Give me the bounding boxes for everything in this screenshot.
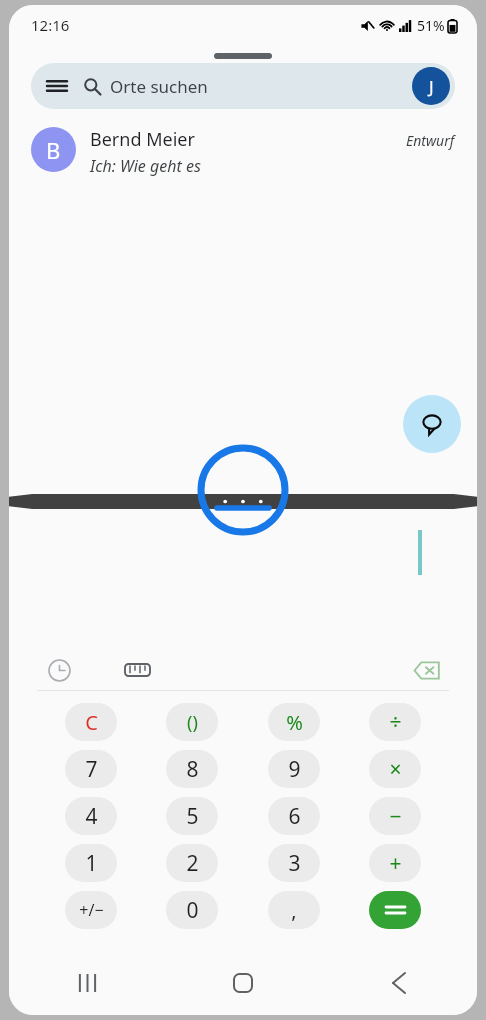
staticText: 2 bbox=[186, 849, 199, 878]
button[interactable]: Home bbox=[165, 959, 321, 1007]
staticText: 4 bbox=[85, 802, 98, 831]
staticText: , bbox=[291, 897, 297, 924]
button[interactable]: Menu bbox=[31, 63, 455, 109]
button[interactable]: − bbox=[369, 797, 421, 835]
staticText: Ich: Wie geht es bbox=[90, 155, 201, 177]
button[interactable] bbox=[369, 891, 421, 929]
button[interactable]: 6 bbox=[268, 797, 320, 835]
staticText: Orte suchen bbox=[110, 75, 208, 98]
staticText: 0 bbox=[186, 896, 199, 925]
button[interactable]: , bbox=[268, 891, 320, 929]
button[interactable]: New chat bbox=[403, 395, 461, 453]
staticText: 9 bbox=[288, 755, 301, 784]
button[interactable]: 7 bbox=[65, 750, 117, 788]
staticText: 7 bbox=[85, 755, 98, 784]
button[interactable]: Recent apps bbox=[9, 959, 165, 1007]
staticText: ÷ bbox=[389, 708, 402, 737]
button[interactable]: 5 bbox=[166, 797, 218, 835]
button[interactable]: () bbox=[166, 703, 218, 741]
button[interactable]: 1 bbox=[65, 844, 117, 882]
button[interactable]: + bbox=[369, 844, 421, 882]
button[interactable]: +/− bbox=[65, 891, 117, 929]
button[interactable]: 8 bbox=[166, 750, 218, 788]
button[interactable]: Back bbox=[321, 959, 477, 1007]
staticText: +/− bbox=[79, 899, 104, 921]
staticText: () bbox=[187, 710, 198, 735]
staticText: C bbox=[85, 709, 98, 736]
staticText: 8 bbox=[186, 755, 199, 784]
button[interactable]: 9 bbox=[268, 750, 320, 788]
staticText: 6 bbox=[288, 802, 301, 831]
staticText: % bbox=[286, 709, 303, 736]
button[interactable]: Split screen divider bbox=[9, 493, 477, 510]
button[interactable]: B bbox=[9, 124, 477, 180]
staticText: + bbox=[389, 849, 402, 878]
staticText: Entwurf bbox=[406, 131, 455, 150]
staticText: − bbox=[389, 802, 402, 831]
staticText: Bernd Meier bbox=[90, 127, 195, 152]
staticText: J bbox=[429, 75, 434, 98]
button[interactable]: C bbox=[65, 703, 117, 741]
button[interactable]: 4 bbox=[65, 797, 117, 835]
button[interactable]: Converter bbox=[117, 650, 157, 690]
button[interactable]: % bbox=[268, 703, 320, 741]
staticText: 51% bbox=[417, 16, 445, 35]
staticText: 3 bbox=[288, 849, 301, 878]
other: Menu bbox=[47, 76, 67, 96]
button[interactable]: 3 bbox=[268, 844, 320, 882]
button[interactable]: Account bbox=[412, 67, 450, 105]
button[interactable]: × bbox=[369, 750, 421, 788]
staticText: 1 bbox=[85, 849, 98, 878]
button[interactable]: 2 bbox=[166, 844, 218, 882]
button[interactable]: 0 bbox=[166, 891, 218, 929]
staticText: × bbox=[389, 755, 402, 784]
staticText: B bbox=[46, 135, 61, 165]
button[interactable]: Backspace bbox=[407, 650, 447, 690]
button[interactable]: History bbox=[39, 650, 79, 690]
staticText: 12:16 bbox=[31, 15, 70, 35]
button[interactable]: ÷ bbox=[369, 703, 421, 741]
staticText: 5 bbox=[186, 802, 199, 831]
